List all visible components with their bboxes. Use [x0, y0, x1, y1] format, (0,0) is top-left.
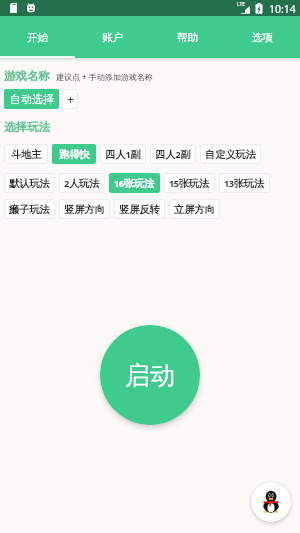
button[interactable]: 斗地主: [4, 144, 48, 164]
staticText: +: [67, 91, 74, 107]
staticText: 2人玩法: [64, 177, 100, 190]
button[interactable]: 启动: [100, 325, 200, 425]
staticText: 跑得快: [59, 148, 90, 161]
staticText: 竖屏方向: [64, 203, 105, 216]
staticText: 自定义玩法: [205, 148, 256, 161]
staticText: 立屏方向: [174, 203, 215, 216]
staticText: 四人2副: [155, 148, 191, 161]
button[interactable]: 开始: [0, 16, 75, 58]
staticText: LTE: [237, 1, 246, 8]
button[interactable]: 账户: [75, 16, 150, 58]
button[interactable]: 竖屏方向: [59, 199, 110, 219]
button[interactable]: Add game name: [62, 89, 78, 109]
button[interactable]: 跑得快: [52, 144, 96, 164]
button[interactable]: 15张玩法: [164, 173, 215, 193]
staticText: 15张玩法: [169, 177, 210, 190]
staticText: 斗地主: [11, 148, 42, 161]
button[interactable]: QQ: [251, 482, 291, 522]
button[interactable]: 默认玩法: [4, 173, 55, 193]
button[interactable]: 帮助: [150, 16, 225, 58]
staticText: 10:14: [269, 2, 296, 16]
button[interactable]: 四人2副: [150, 144, 196, 164]
button[interactable]: 13张玩法: [219, 173, 270, 193]
staticText: 癞子玩法: [9, 203, 50, 216]
button[interactable]: 16张玩法: [109, 173, 160, 193]
staticText: 默认玩法: [9, 177, 50, 190]
staticText: 帮助: [177, 31, 198, 44]
staticText: 启动: [125, 360, 175, 391]
staticText: 开始: [27, 31, 48, 44]
button[interactable]: 竖屏反转: [114, 199, 165, 219]
button[interactable]: 自定义玩法: [200, 144, 261, 164]
staticText: 账户: [102, 31, 123, 44]
button[interactable]: 自动选择: [4, 89, 59, 109]
button[interactable]: 2人玩法: [59, 173, 105, 193]
staticText: 选择玩法: [4, 120, 50, 134]
button[interactable]: 四人1副: [100, 144, 146, 164]
staticText: 建议点 + 手动添加游戏名称: [56, 71, 153, 82]
staticText: 自动选择: [10, 92, 54, 106]
button[interactable]: 选项: [225, 16, 300, 58]
staticText: 16张玩法: [114, 177, 155, 190]
staticText: 选项: [252, 31, 273, 44]
button[interactable]: 立屏方向: [169, 199, 220, 219]
staticText: 游戏名称: [4, 69, 50, 83]
staticText: 竖屏反转: [119, 203, 160, 216]
button[interactable]: 癞子玩法: [4, 199, 55, 219]
staticText: 四人1副: [105, 148, 141, 161]
staticText: 13张玩法: [224, 177, 265, 190]
